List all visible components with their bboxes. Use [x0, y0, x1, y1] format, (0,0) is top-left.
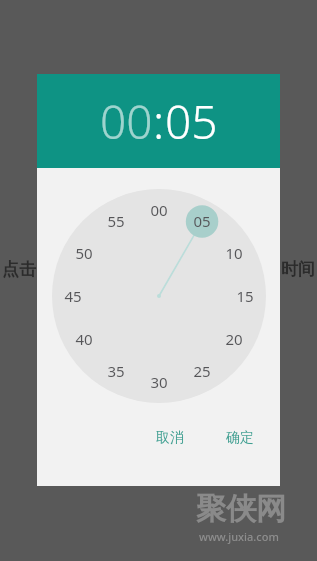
staticText: 取消 — [156, 429, 184, 447]
staticText: 00 — [150, 200, 168, 220]
staticText: 50 — [75, 243, 93, 263]
button[interactable]: 05 — [165, 90, 218, 153]
staticText: 30 — [150, 372, 168, 392]
button[interactable]: 30 — [146, 369, 172, 395]
button[interactable]: 10 — [221, 240, 247, 266]
staticText: 聚侠网 — [196, 490, 286, 528]
staticText: : — [153, 90, 165, 153]
staticText: 05 — [193, 211, 211, 231]
staticText: 40 — [75, 329, 93, 349]
button[interactable]: 45 — [60, 283, 86, 309]
button[interactable]: 55 — [103, 208, 129, 234]
staticText: www.juxia.com — [199, 529, 279, 544]
staticText: 确定 — [226, 429, 254, 447]
button[interactable]: 取消 — [146, 423, 194, 453]
staticText: 10 — [225, 243, 243, 263]
staticText: 55 — [107, 211, 125, 231]
staticText: 15 — [236, 286, 254, 306]
staticText: 35 — [107, 361, 125, 381]
staticText: 时间 — [281, 259, 315, 280]
button[interactable]: 35 — [103, 358, 129, 384]
button[interactable]: 00 — [146, 197, 172, 223]
staticText: 点击 — [2, 259, 36, 280]
button[interactable]: 05 — [189, 208, 215, 234]
staticText: 20 — [225, 329, 243, 349]
button[interactable]: 15 — [232, 283, 258, 309]
button[interactable]: 25 — [189, 358, 215, 384]
staticText: 45 — [64, 286, 82, 306]
button[interactable]: 20 — [221, 326, 247, 352]
button[interactable]: 确定 — [216, 423, 264, 453]
staticText: 25 — [193, 361, 211, 381]
button[interactable]: 00 — [37, 168, 280, 423]
button[interactable]: 40 — [71, 326, 97, 352]
button[interactable]: 50 — [71, 240, 97, 266]
button[interactable]: 00 — [100, 90, 153, 153]
